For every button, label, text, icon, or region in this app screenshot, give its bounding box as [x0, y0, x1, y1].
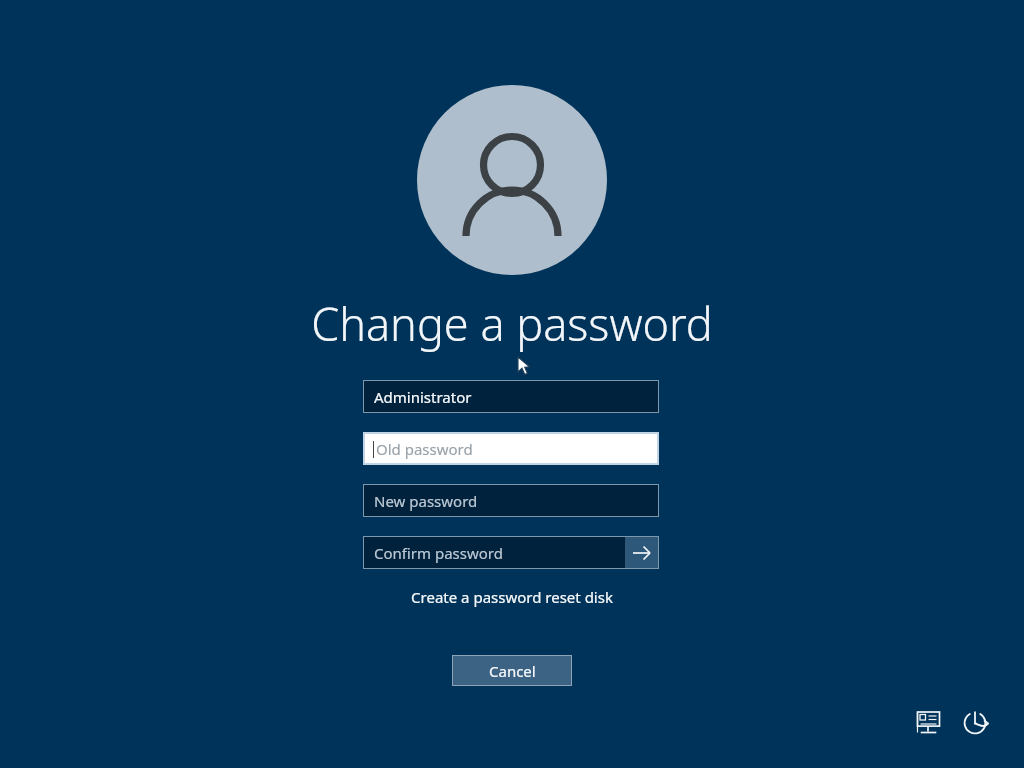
staticText: Administrator [374, 387, 472, 407]
staticText: Cancel [489, 661, 536, 681]
button[interactable]: Create a password reset disk [400, 585, 624, 609]
button[interactable]: New password [364, 485, 658, 516]
button[interactable]: Cancel [452, 655, 572, 686]
staticText: Change a password [311, 293, 713, 354]
button[interactable]: Confirm password [364, 537, 624, 568]
staticText: New password [374, 491, 478, 511]
button[interactable]: Shut down [956, 703, 996, 743]
staticText: Old password [376, 439, 473, 459]
staticText: Confirm password [374, 543, 503, 563]
staticText: Create a password reset disk [411, 587, 613, 607]
button[interactable]: User name [364, 381, 658, 412]
button[interactable]: Submit [625, 537, 658, 568]
button[interactable]: Ease of access [908, 703, 948, 743]
button[interactable]: Old password [365, 434, 657, 463]
